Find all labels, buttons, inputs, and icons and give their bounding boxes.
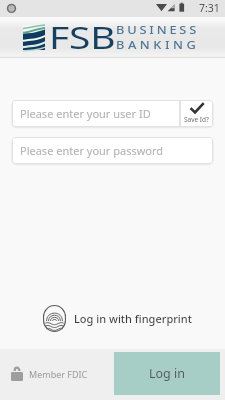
staticText: Member FDIC	[29, 368, 88, 380]
staticText: Log in	[149, 365, 186, 382]
staticText: BUSINESS	[116, 23, 200, 37]
staticText: Please enter your user ID	[20, 106, 151, 121]
staticText: BANKING	[116, 38, 200, 52]
staticText: 7:31	[199, 1, 220, 15]
staticText: Log in with fingerprint	[74, 311, 192, 326]
staticText: Save Id?	[184, 115, 209, 124]
button[interactable]: Log in	[114, 352, 220, 395]
staticText: Please enter your password	[20, 143, 164, 158]
button[interactable]: Please enter your password	[12, 137, 213, 164]
staticText: FSB	[49, 17, 115, 58]
button[interactable]: Log in with fingerprint	[43, 305, 192, 332]
button[interactable]: Save Id	[180, 100, 213, 127]
button[interactable]: Please enter your user ID	[12, 100, 180, 127]
